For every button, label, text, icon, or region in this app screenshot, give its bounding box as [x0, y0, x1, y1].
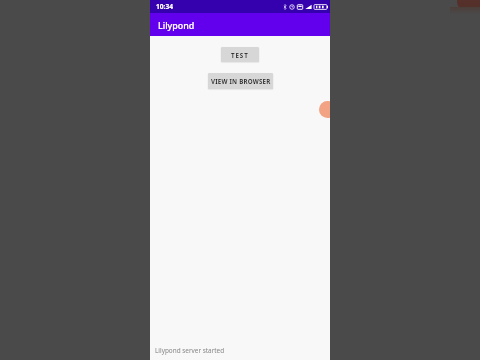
other: Battery — [314, 4, 328, 10]
staticText: Lilypond — [158, 19, 195, 31]
button[interactable]: VIEW IN BROWSER — [208, 73, 273, 89]
other: Wi-Fi connected — [297, 4, 303, 10]
button[interactable]: Compile score — [319, 101, 330, 118]
staticText: Lilypond server started — [155, 346, 225, 355]
button[interactable]: TEST — [221, 47, 259, 62]
other: Mobile signal — [305, 4, 312, 10]
other: Alarm set — [289, 4, 295, 10]
staticText: VIEW IN BROWSER — [211, 77, 271, 85]
staticText: TEST — [231, 51, 249, 59]
other: Bluetooth on — [283, 4, 287, 10]
staticText: 10:34 — [156, 2, 173, 11]
